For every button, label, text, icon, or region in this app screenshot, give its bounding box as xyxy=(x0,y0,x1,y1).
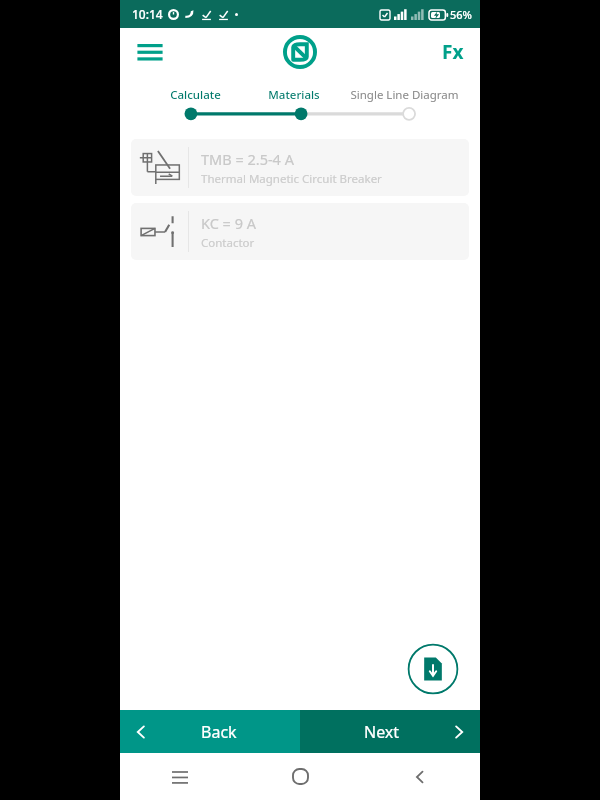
button[interactable]: Download PDF xyxy=(407,643,459,695)
staticText: KC = 9 A xyxy=(201,213,257,233)
button[interactable]: Back xyxy=(120,710,300,753)
button[interactable]: TMB = 2.5-4 A xyxy=(131,139,469,196)
button[interactable]: Single Line Diagram xyxy=(343,87,466,103)
staticText: Calculate xyxy=(170,87,221,103)
button[interactable]: Home xyxy=(240,753,360,800)
staticText: Fx xyxy=(442,39,464,65)
staticText: Back xyxy=(201,721,237,743)
button[interactable]: Next xyxy=(300,710,480,753)
button[interactable]: Open navigation menu xyxy=(128,30,172,74)
button[interactable]: Fx xyxy=(436,35,470,69)
staticText: 10:14 xyxy=(132,6,163,22)
button[interactable]: Recent apps xyxy=(120,753,240,800)
staticText: Materials xyxy=(268,87,320,103)
staticText: 56% xyxy=(450,7,472,22)
button[interactable]: Calculate xyxy=(146,87,245,103)
staticText: Contactor xyxy=(201,235,255,251)
staticText: Thermal Magnetic Circuit Breaker xyxy=(201,171,382,187)
button[interactable]: Back xyxy=(360,753,480,800)
button[interactable]: KC = 9 A xyxy=(131,203,469,260)
button[interactable]: Materials xyxy=(245,87,343,103)
staticText: Single Line Diagram xyxy=(350,87,459,103)
staticText: TMB = 2.5-4 A xyxy=(201,149,294,169)
staticText: Next xyxy=(364,721,400,743)
